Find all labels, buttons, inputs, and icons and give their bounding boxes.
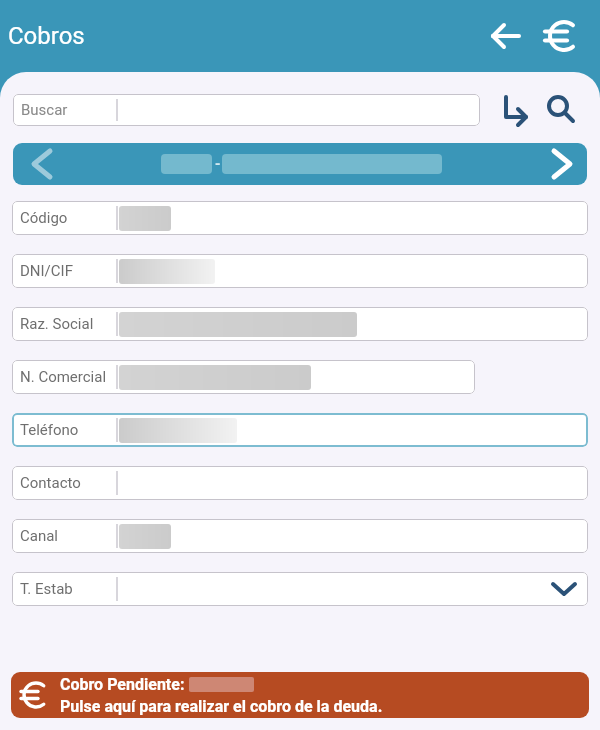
button[interactable]: T. Estab [12,572,588,606]
button[interactable] [538,12,586,60]
button[interactable] [494,88,538,132]
button[interactable] [482,12,530,60]
button[interactable] [539,88,583,132]
staticText: Raz. Social [20,315,94,333]
button[interactable]: N. Comercial [12,360,475,394]
staticText: Contacto [20,474,81,492]
button[interactable]: DNI/CIF [12,254,588,288]
staticText: Código [20,209,68,227]
button[interactable]: - [13,143,587,185]
staticText: Canal [20,527,59,545]
button[interactable]: Raz. Social [12,307,588,341]
button[interactable]: Contacto [12,466,588,500]
staticText: Buscar [21,101,68,119]
staticText: Cobros [8,22,85,50]
staticText: T. Estab [20,580,73,598]
button[interactable]: Buscar [13,94,480,126]
staticText: Pulse aquí para realizar el cobro de la … [60,697,383,716]
staticText: Teléfono [20,421,79,439]
button[interactable]: Teléfono [12,413,588,447]
staticText: DNI/CIF [20,262,73,280]
button[interactable]: Canal [12,519,588,553]
staticText: Cobro Pendiente: [60,675,189,694]
staticText: - [215,156,221,172]
button[interactable]: Cobro Pendiente: [11,672,589,718]
staticText: N. Comercial [20,368,107,386]
button[interactable]: Código [12,201,588,235]
